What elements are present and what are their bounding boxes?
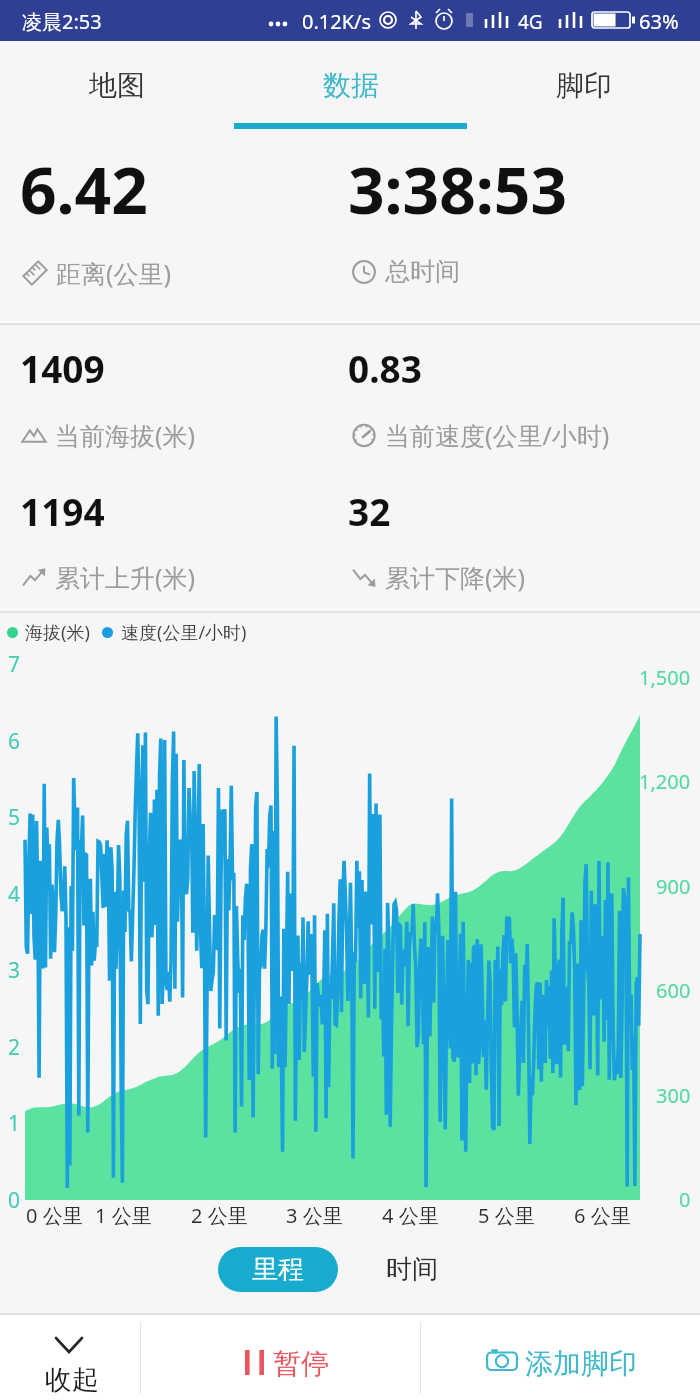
staticText: 6 公里: [574, 1202, 631, 1229]
button[interactable]: 收起: [0, 1315, 140, 1400]
staticText: 1194: [20, 486, 105, 536]
staticText: 距离(公里): [56, 256, 172, 290]
staticText: 2 公里: [191, 1202, 248, 1229]
staticText: 3 公里: [286, 1202, 343, 1229]
staticText: 6: [8, 727, 21, 756]
staticText: 累计下降(米): [385, 560, 526, 594]
staticText: 时间: [386, 1253, 438, 1286]
staticText: 1 公里: [95, 1202, 152, 1229]
staticText: 0: [8, 1186, 21, 1215]
staticText: 地图: [89, 68, 145, 103]
button[interactable]: 地图: [0, 0, 234, 131]
staticText: 300: [656, 1082, 691, 1109]
staticText: 1,200: [639, 768, 691, 795]
staticText: 5 公里: [478, 1202, 535, 1229]
staticText: 速度(公里/小时): [121, 620, 247, 645]
staticText: 6.42: [20, 146, 148, 233]
staticText: 添加脚印: [525, 1346, 637, 1381]
staticText: 3: [8, 956, 21, 985]
staticText: 0: [679, 1186, 691, 1213]
button[interactable]: 添加脚印: [421, 1315, 700, 1400]
other: 收起: [56, 1338, 82, 1352]
staticText: 1,500: [639, 664, 691, 691]
staticText: 900: [656, 873, 691, 900]
staticText: 7: [8, 650, 21, 679]
staticText: 0.12K/s: [302, 8, 372, 35]
staticText: 3:38:53: [348, 146, 568, 233]
staticText: 4G: [518, 9, 543, 35]
staticText: 当前海拔(米): [55, 418, 196, 452]
staticText: 暂停: [273, 1346, 329, 1381]
staticText: 0 公里: [26, 1202, 83, 1229]
staticText: 收起: [45, 1363, 99, 1397]
staticText: 数据: [323, 68, 379, 103]
staticText: 当前速度(公里/小时): [385, 418, 610, 452]
button[interactable]: 里程: [218, 1247, 338, 1292]
button[interactable]: 时间: [366, 1247, 458, 1292]
button[interactable]: 暂停: [141, 1315, 420, 1400]
staticText: 600: [656, 977, 691, 1004]
staticText: 累计上升(米): [55, 560, 196, 594]
staticText: 1: [8, 1109, 21, 1138]
staticText: 海拔(米): [25, 620, 90, 645]
staticText: 里程: [252, 1253, 304, 1286]
staticText: 32: [348, 486, 391, 536]
staticText: 4 公里: [382, 1202, 439, 1229]
staticText: 1409: [20, 343, 105, 393]
staticText: 2: [8, 1033, 21, 1062]
staticText: 0.83: [348, 343, 422, 393]
button[interactable]: 脚印: [467, 0, 700, 131]
staticText: 63%: [639, 8, 679, 35]
button[interactable]: 数据: [234, 0, 467, 131]
staticText: 总时间: [385, 256, 460, 287]
staticText: 凌晨2:53: [22, 8, 102, 35]
staticText: 4: [8, 880, 21, 909]
staticText: 脚印: [556, 68, 612, 103]
staticText: 5: [8, 803, 21, 832]
